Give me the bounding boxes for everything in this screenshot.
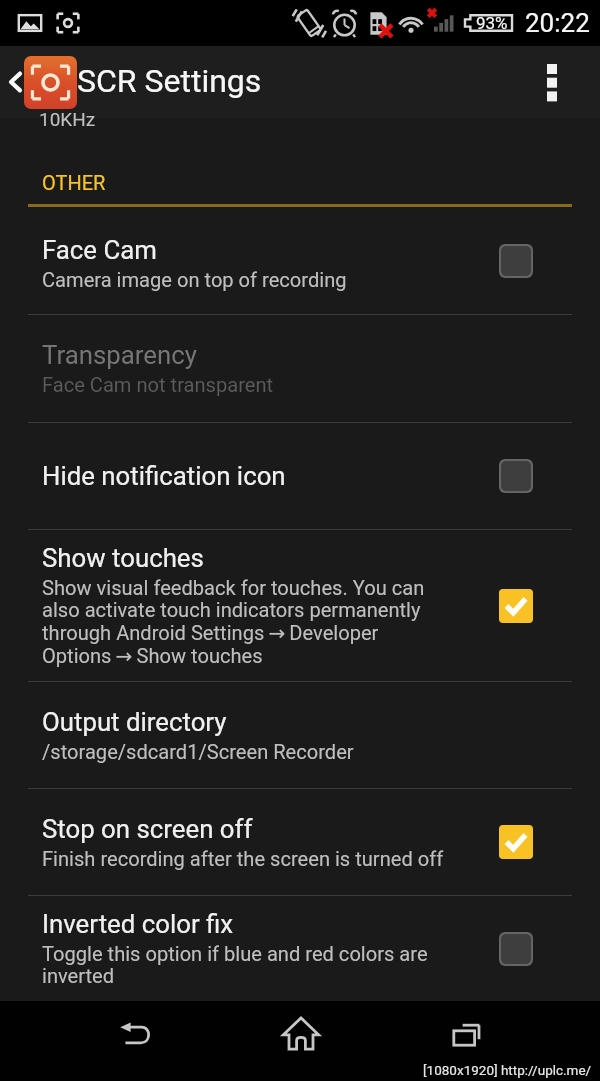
button[interactable]: Face Cam bbox=[0, 207, 600, 314]
button[interactable]: Recent apps bbox=[419, 1001, 519, 1081]
staticText: Transparency bbox=[42, 340, 197, 370]
button[interactable]: Inverted color fix toggle bbox=[499, 932, 533, 966]
staticText: Toggle this option if blue and red color… bbox=[42, 942, 428, 988]
staticText: Hide notification icon bbox=[42, 461, 286, 491]
staticText: 93% bbox=[476, 13, 508, 33]
button[interactable]: Transparency bbox=[0, 315, 600, 422]
button[interactable]: Navigate up bbox=[0, 46, 78, 118]
staticText: /storage/sdcard1/Screen Recorder bbox=[42, 740, 354, 764]
staticText: Face Cam bbox=[42, 235, 157, 265]
button[interactable]: More options bbox=[521, 46, 583, 118]
staticText: SCR Settings bbox=[77, 62, 262, 100]
staticText: Output directory bbox=[42, 707, 227, 737]
staticText: 20:22 bbox=[525, 8, 590, 38]
button[interactable]: Stop on screen off bbox=[0, 789, 600, 895]
button[interactable]: Face Cam toggle bbox=[499, 244, 533, 278]
staticText: Show touches bbox=[42, 543, 204, 573]
button[interactable]: Hide notification icon toggle bbox=[499, 459, 533, 493]
button[interactable]: Output directory bbox=[0, 682, 600, 788]
button[interactable]: Show touches toggle bbox=[499, 589, 533, 623]
staticText: Inverted color fix bbox=[42, 909, 234, 939]
button[interactable]: Hide notification icon bbox=[0, 423, 600, 529]
staticText: Camera image on top of recording bbox=[42, 268, 347, 292]
button[interactable]: Home bbox=[251, 1001, 351, 1081]
staticText: Stop on screen off bbox=[42, 814, 253, 844]
staticText: 10KHz bbox=[39, 108, 96, 130]
staticText: Face Cam not transparent bbox=[42, 373, 274, 397]
button[interactable]: Inverted color fix bbox=[0, 896, 600, 1001]
staticText: Show visual feedback for touches. You ca… bbox=[42, 576, 425, 668]
staticText: Finish recording after the screen is tur… bbox=[42, 847, 444, 871]
staticText: OTHER bbox=[42, 171, 106, 194]
button[interactable]: Stop on screen off toggle bbox=[499, 825, 533, 859]
button[interactable]: Back bbox=[87, 1001, 187, 1081]
staticText: [1080x1920] http://uplc.me/ bbox=[423, 1062, 592, 1078]
button[interactable]: Show touches bbox=[0, 530, 600, 681]
